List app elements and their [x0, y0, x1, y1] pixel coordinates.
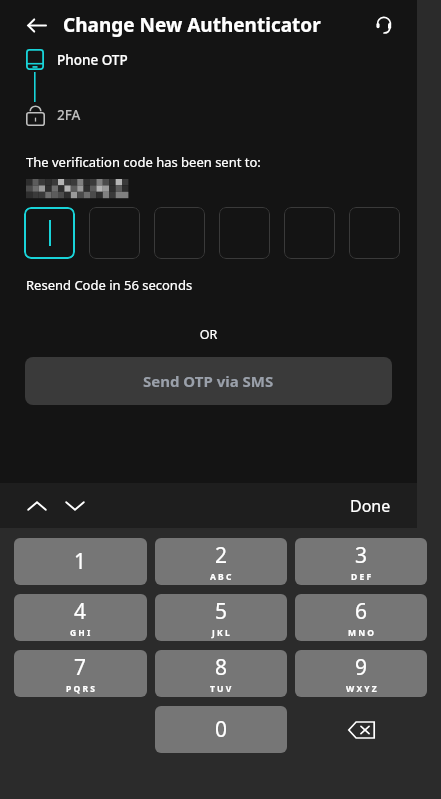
staticText: Change New Authenticator	[63, 12, 321, 38]
staticText: 8	[215, 653, 228, 682]
button[interactable]: 8	[155, 650, 287, 697]
button[interactable]: Back	[22, 11, 50, 39]
button[interactable]: 6	[295, 594, 427, 641]
button[interactable]: 5	[155, 594, 287, 641]
button[interactable]: Previous field	[22, 491, 52, 521]
staticText: A B C	[210, 571, 232, 583]
staticText: 3	[355, 541, 368, 570]
button[interactable]: Support	[369, 10, 399, 40]
button[interactable]: Send OTP via SMS	[25, 357, 392, 405]
staticText: D E F	[351, 571, 372, 583]
staticText: Done	[350, 495, 391, 517]
staticText: M N O	[348, 627, 375, 639]
button[interactable]: Next field	[60, 491, 90, 521]
button[interactable]	[154, 207, 205, 259]
staticText: Resend Code in 56 seconds	[26, 276, 193, 294]
staticText: 9	[355, 653, 368, 682]
staticText: G H I	[70, 627, 91, 639]
button[interactable]: 0	[155, 706, 287, 753]
staticText: 0	[215, 715, 228, 744]
staticText: 7	[74, 653, 87, 682]
button[interactable]: 1	[14, 538, 147, 585]
button[interactable]	[284, 207, 335, 259]
staticText: T U V	[210, 683, 232, 695]
staticText: Send OTP via SMS	[143, 371, 274, 391]
staticText: 1	[74, 547, 87, 576]
staticText: 4	[74, 597, 87, 626]
button[interactable]: 3	[295, 538, 427, 585]
button[interactable]	[24, 207, 75, 259]
staticText: OR	[0, 326, 417, 343]
button[interactable]: Backspace	[295, 706, 427, 753]
staticText: 2FA	[57, 106, 81, 124]
button[interactable]	[219, 207, 270, 259]
button[interactable]: 4	[14, 594, 147, 641]
staticText: W X Y Z	[346, 683, 377, 695]
button[interactable]: Done	[346, 491, 395, 521]
button[interactable]	[89, 207, 140, 259]
staticText: J K L	[212, 627, 230, 639]
staticText: P Q R S	[66, 683, 95, 695]
button[interactable]: 9	[295, 650, 427, 697]
staticText: 2	[215, 541, 228, 570]
staticText: 6	[355, 597, 368, 626]
button[interactable]	[349, 207, 400, 259]
staticText: Phone OTP	[57, 51, 128, 69]
button[interactable]: 7	[14, 650, 147, 697]
staticText: The verification code has been sent to:	[26, 153, 261, 171]
button[interactable]: 2	[155, 538, 287, 585]
staticText: 5	[215, 597, 228, 626]
